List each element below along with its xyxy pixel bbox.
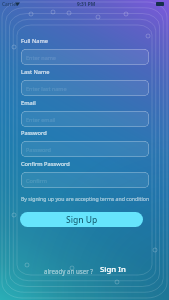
staticText: Full Name bbox=[21, 37, 48, 45]
button[interactable]: Sign In bbox=[100, 264, 126, 275]
staticText: Carrier bbox=[2, 1, 18, 8]
staticText: Password bbox=[21, 129, 47, 137]
button[interactable]: Enter last name bbox=[21, 80, 149, 96]
staticText: Confirm bbox=[26, 177, 47, 184]
button[interactable]: Confirm bbox=[21, 172, 149, 188]
staticText: Last Name bbox=[21, 68, 50, 76]
button[interactable]: Enter email bbox=[21, 111, 149, 127]
button[interactable]: Password bbox=[21, 141, 149, 157]
staticText: Enter last name bbox=[26, 85, 67, 92]
staticText: 9:31 PM bbox=[77, 1, 96, 8]
staticText: Enter email bbox=[26, 116, 56, 123]
button[interactable]: Enter name bbox=[21, 49, 149, 65]
staticText: Sign Up bbox=[66, 214, 98, 226]
staticText: By signing up you are accepting terms an… bbox=[21, 195, 150, 202]
staticText: already an user ? bbox=[44, 267, 94, 275]
other: Wifi signal bbox=[15, 2, 20, 6]
staticText: Sign In bbox=[100, 264, 126, 275]
staticText: Password bbox=[26, 146, 51, 153]
staticText: Confirm Password bbox=[21, 160, 70, 168]
staticText: Email bbox=[21, 99, 36, 107]
button[interactable]: Sign Up bbox=[20, 212, 143, 227]
staticText: Enter name bbox=[26, 54, 56, 61]
